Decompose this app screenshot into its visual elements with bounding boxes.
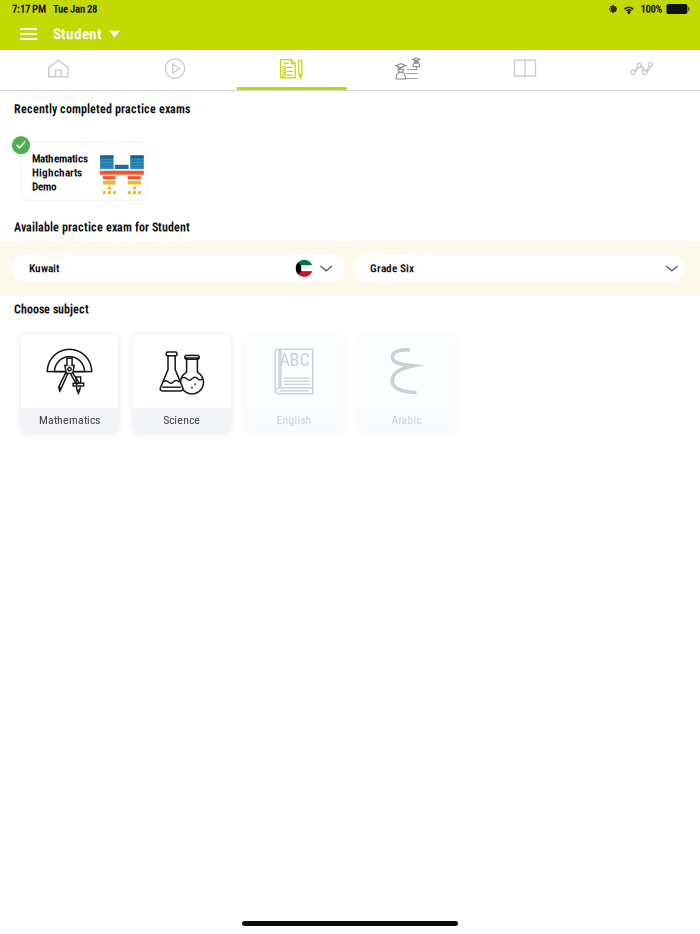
staticText: Choose subject — [14, 302, 89, 316]
button[interactable]: Mathematics — [21, 334, 118, 431]
staticText: Kuwait — [29, 262, 59, 275]
button[interactable]: Assignments — [350, 50, 467, 90]
staticText: Recently completed practice exams — [14, 102, 190, 116]
staticText: ABC — [280, 349, 310, 370]
staticText: 7:17 PM — [12, 3, 46, 15]
staticText: Available practice exam for Student — [14, 220, 190, 234]
staticText: Mathematics — [32, 152, 88, 165]
button[interactable]: Home — [0, 50, 117, 90]
staticText: Highcharts — [32, 166, 82, 179]
staticText: Mathematics — [39, 413, 100, 427]
button[interactable]: ABC — [246, 334, 343, 431]
staticText: Science — [163, 413, 200, 427]
button[interactable]: Videos — [117, 50, 233, 90]
button[interactable]: Menu — [12, 19, 45, 49]
button[interactable]: Arabic — [358, 334, 455, 431]
staticText: Student — [53, 25, 102, 43]
button[interactable]: Reports — [583, 50, 700, 90]
button[interactable]: Student — [45, 17, 128, 51]
button[interactable]: Library — [467, 50, 583, 90]
staticText: Arabic — [391, 413, 421, 427]
staticText: Demo — [32, 180, 57, 193]
staticText: English — [277, 413, 312, 427]
button[interactable]: Grade Six — [353, 255, 685, 282]
button[interactable]: Kuwait — [12, 255, 345, 282]
button[interactable]: Practice exams — [233, 50, 350, 90]
button[interactable]: Science — [133, 334, 230, 431]
staticText: 100% — [640, 3, 662, 15]
staticText: Grade Six — [370, 262, 414, 275]
button[interactable]: Mathematics — [8, 136, 163, 206]
staticText: Tue Jan 28 — [53, 3, 97, 15]
